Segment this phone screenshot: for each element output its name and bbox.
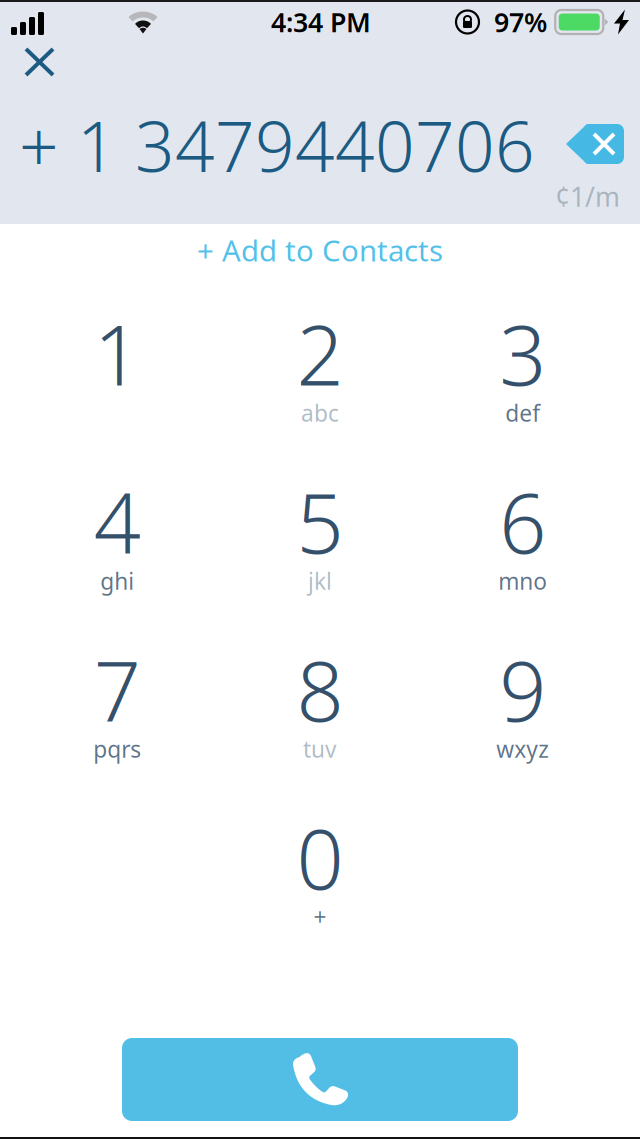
- staticText: 7: [94, 635, 141, 744]
- staticText: ghi: [100, 566, 134, 596]
- button[interactable]: 6: [421, 476, 624, 644]
- staticText: + 1 3479440706: [19, 99, 535, 191]
- staticText: ¢1/m: [555, 179, 620, 214]
- staticText: 97%: [494, 4, 547, 40]
- button[interactable]: 5: [219, 476, 421, 644]
- staticText: def: [505, 398, 540, 428]
- button[interactable]: 3: [421, 308, 624, 476]
- staticText: +: [313, 902, 326, 932]
- staticText: 0: [296, 803, 343, 912]
- button[interactable]: 0: [219, 812, 421, 980]
- button[interactable]: 8: [219, 644, 421, 812]
- staticText: jkl: [308, 566, 332, 596]
- staticText: 6: [499, 467, 546, 576]
- staticText: 4:34 PM: [271, 4, 371, 40]
- staticText: 9: [499, 635, 546, 744]
- staticText: pqrs: [93, 734, 141, 764]
- staticText: wxyz: [496, 734, 549, 764]
- button[interactable]: Close: [0, 43, 67, 81]
- staticText: 5: [296, 467, 343, 576]
- staticText: + Add to Contacts: [197, 230, 443, 269]
- button[interactable]: + Add to Contacts: [0, 224, 640, 276]
- button[interactable]: Call: [122, 1038, 518, 1121]
- button[interactable]: 7: [16, 644, 219, 812]
- staticText: 1: [94, 299, 141, 408]
- staticText: tuv: [303, 734, 337, 764]
- button[interactable]: 4: [16, 476, 219, 644]
- staticText: 3: [499, 299, 546, 408]
- staticText: 2: [296, 299, 343, 408]
- staticText: mno: [498, 566, 547, 596]
- button[interactable]: Delete: [566, 82, 640, 164]
- staticText: abc: [301, 398, 339, 428]
- staticText: 4: [94, 467, 141, 576]
- button[interactable]: 2: [219, 308, 421, 476]
- button[interactable]: 1: [16, 308, 219, 476]
- button[interactable]: 9: [421, 644, 624, 812]
- staticText: 8: [296, 635, 343, 744]
